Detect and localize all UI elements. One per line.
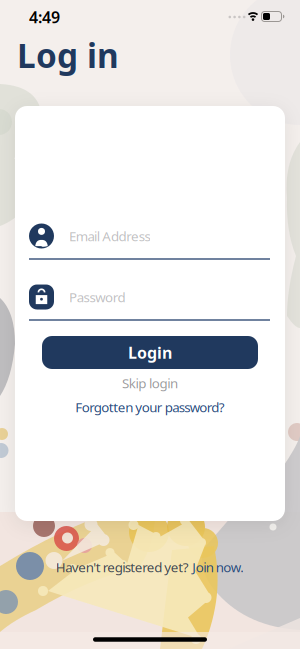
staticText: Email Address: [69, 227, 150, 245]
staticText: Log in: [17, 33, 119, 77]
staticText: Forgotten your password?: [75, 398, 225, 416]
button[interactable]: Skip login: [119, 371, 181, 395]
button[interactable]: Login: [42, 336, 258, 369]
staticText: Haven't registered yet?: [56, 558, 189, 576]
button[interactable]: Email Address: [15, 219, 285, 263]
staticText: Join now.: [192, 558, 244, 576]
button[interactable]: Haven't registered yet?: [53, 555, 247, 579]
staticText: Login: [128, 342, 172, 363]
staticText: 4:49: [29, 6, 60, 28]
staticText: Skip login: [122, 374, 178, 392]
button[interactable]: Forgotten your password?: [72, 395, 228, 419]
button[interactable]: Password: [15, 280, 285, 324]
staticText: Password: [69, 288, 126, 306]
